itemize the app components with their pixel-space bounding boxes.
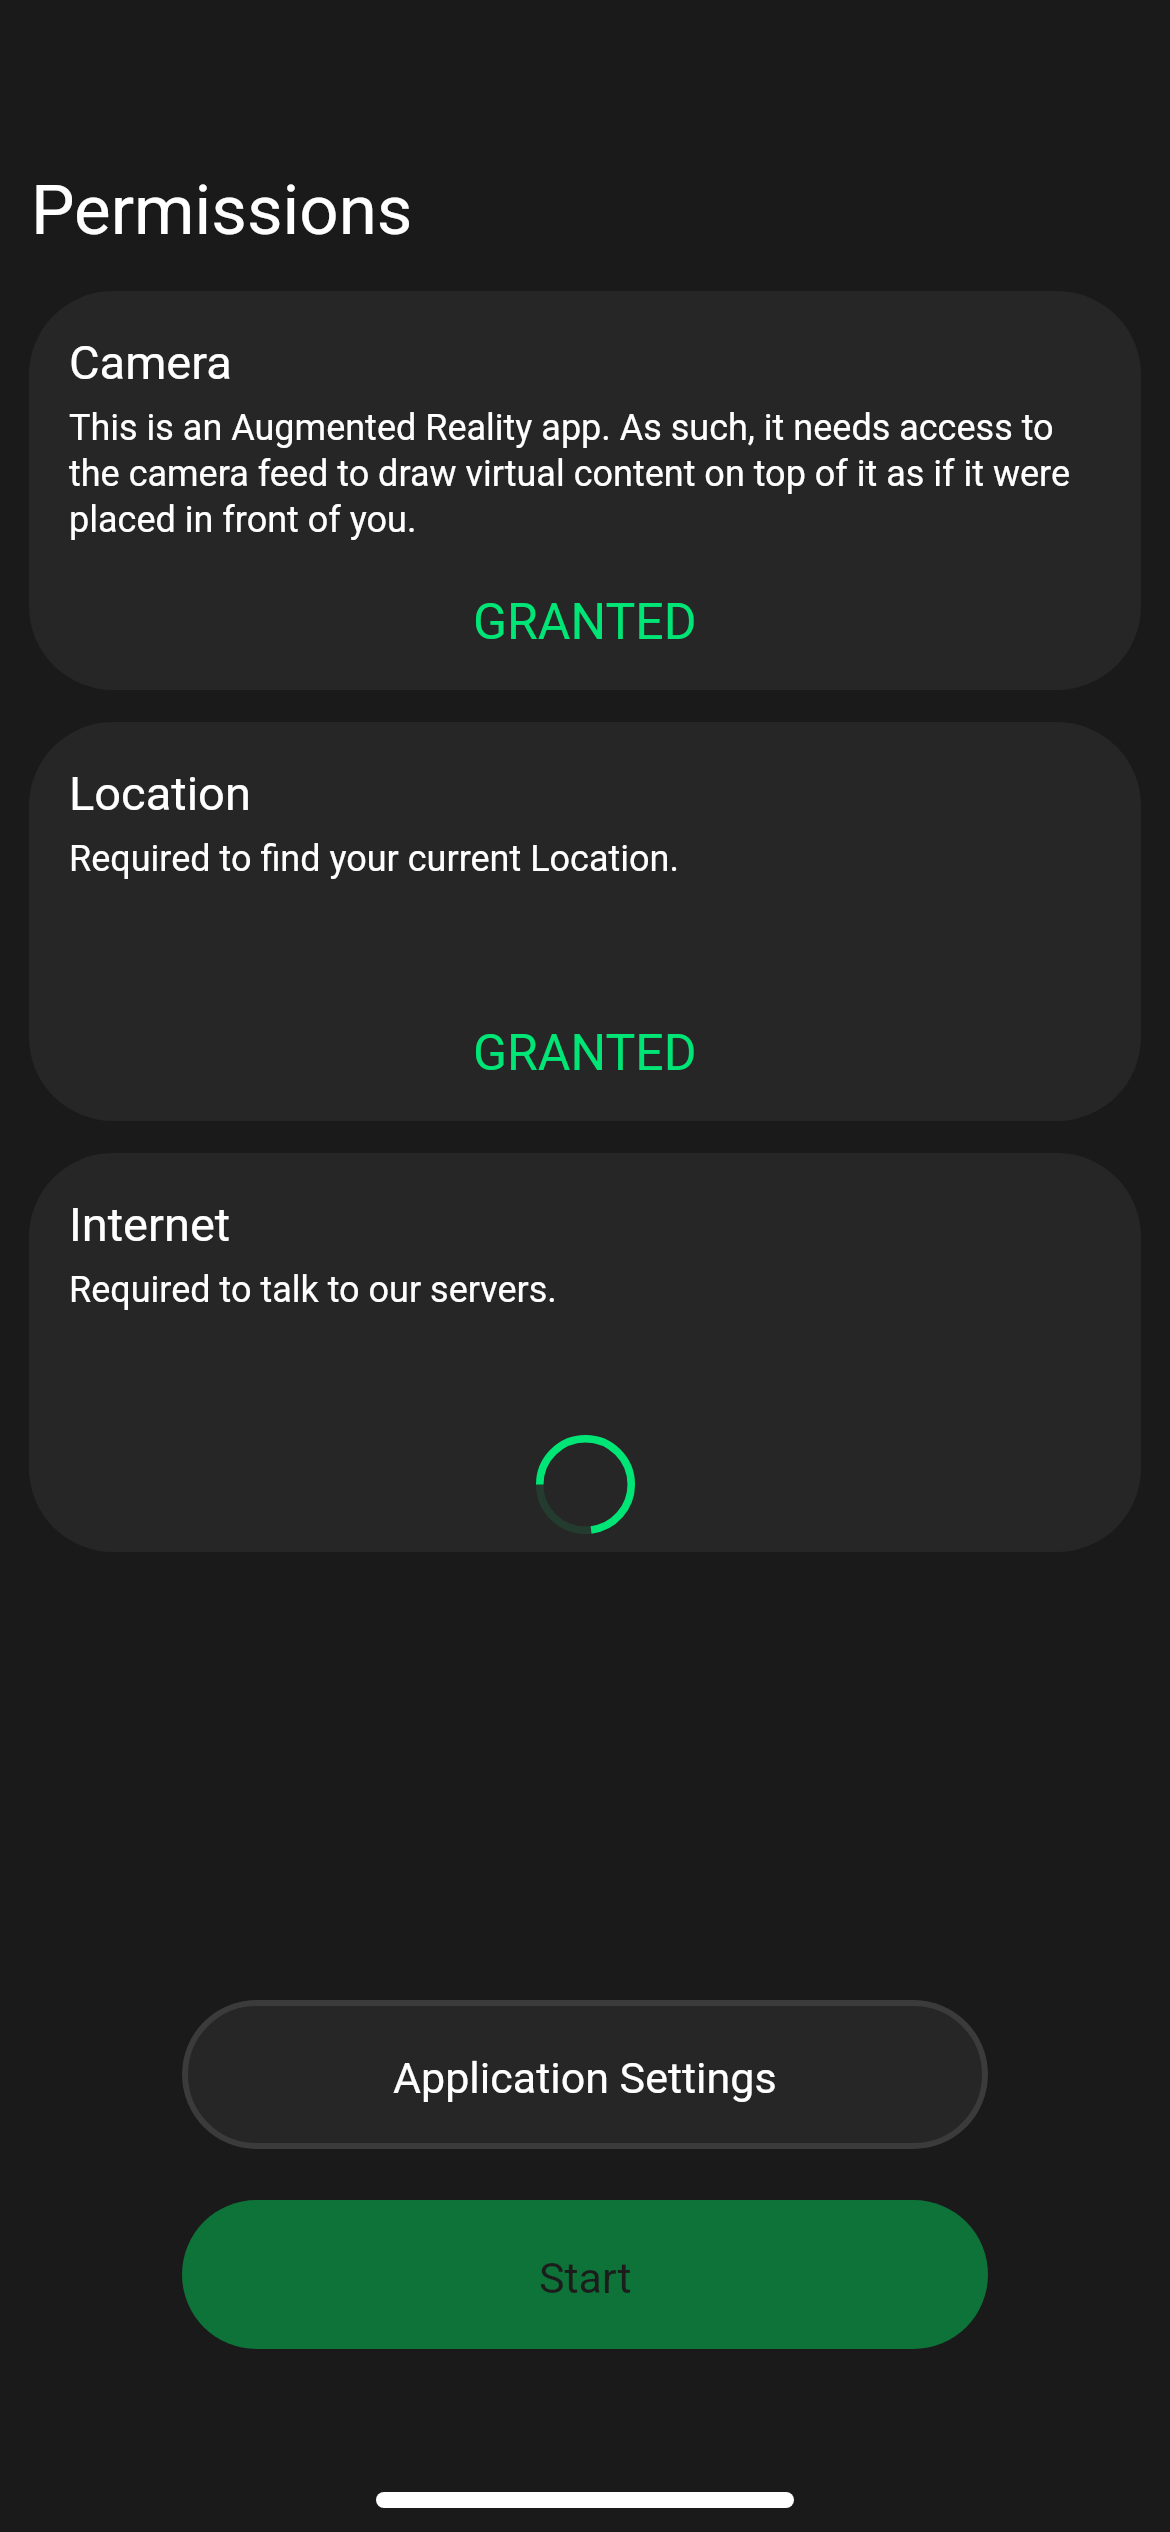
staticText: Required to find your current Location.	[69, 838, 679, 880]
button[interactable]: Application Settings	[182, 2000, 988, 2149]
staticText: GRANTED	[473, 1024, 697, 1083]
staticText: Permissions	[31, 170, 413, 251]
staticText: This is an Augmented Reality app. As suc…	[69, 407, 1095, 541]
button[interactable]: Start	[182, 2200, 988, 2349]
staticText: Start	[539, 2253, 632, 2303]
button[interactable]: Internet	[29, 1153, 1141, 1552]
staticText: Application Settings	[393, 2053, 777, 2103]
other: Checking permission	[536, 1435, 635, 1534]
staticText: Internet	[69, 1197, 231, 1252]
staticText: Camera	[69, 335, 232, 390]
staticText: GRANTED	[473, 593, 697, 652]
staticText: Required to talk to our servers.	[69, 1269, 557, 1311]
button[interactable]: Location	[29, 722, 1141, 1121]
staticText: Location	[69, 766, 251, 821]
button[interactable]: Camera	[29, 291, 1141, 690]
